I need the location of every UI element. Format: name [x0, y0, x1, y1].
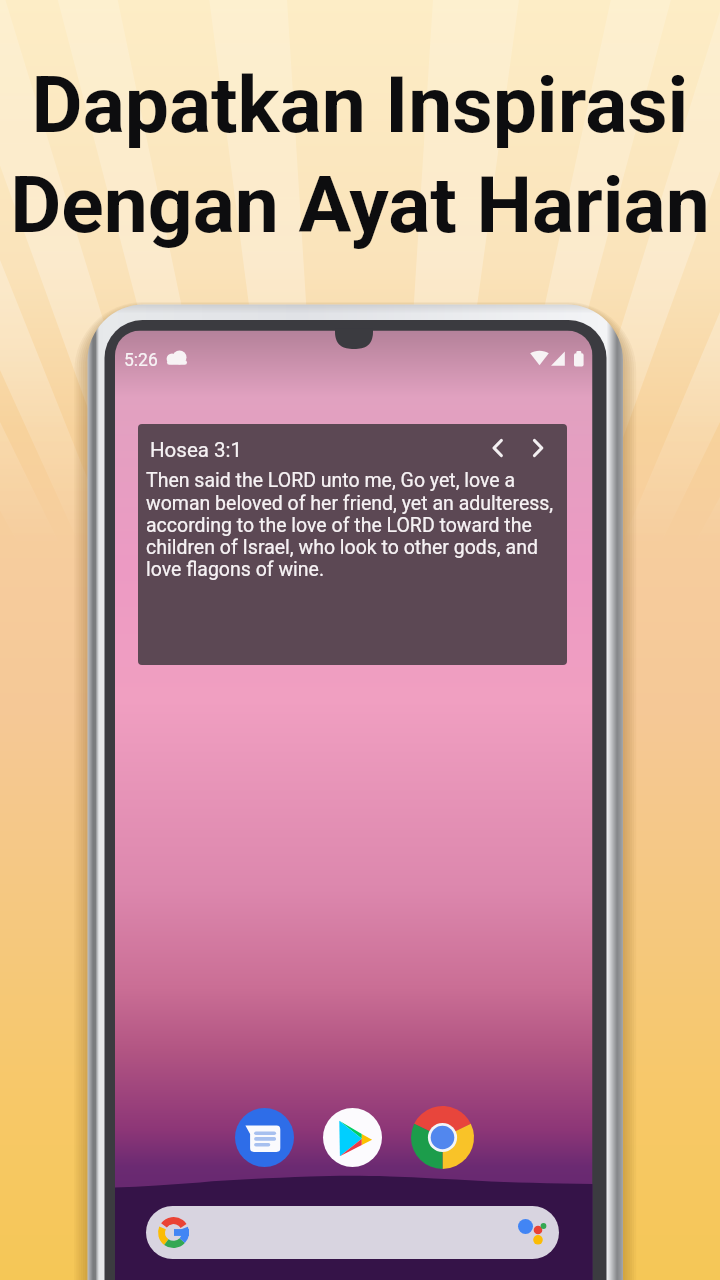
button[interactable]	[138, 424, 567, 665]
button[interactable]: Search	[146, 1206, 559, 1259]
button[interactable]: Messages	[235, 1108, 294, 1167]
button[interactable]: Play Store	[323, 1108, 382, 1167]
staticText: Hosea 3:1	[150, 438, 243, 462]
staticText: 5:26	[124, 350, 158, 371]
button[interactable]: Previous verse	[482, 430, 518, 466]
staticText: Dengan Ayat Harian	[0, 159, 720, 251]
staticText: Then said the LORD unto me, Go yet, love…	[146, 469, 566, 580]
button[interactable]: Chrome	[411, 1106, 474, 1169]
button[interactable]: Next verse	[522, 430, 558, 466]
staticText: Dapatkan Inspirasi	[0, 59, 720, 151]
